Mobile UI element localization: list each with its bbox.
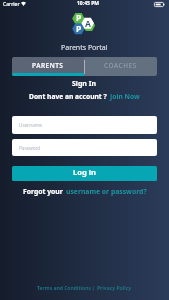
staticText: Privacy Policy	[97, 285, 132, 292]
staticText: PARENTS	[32, 61, 64, 70]
staticText: Sign In	[72, 79, 97, 89]
button[interactable]: Username	[12, 116, 157, 134]
staticText: Password	[19, 145, 41, 151]
button[interactable]: Log in	[12, 166, 157, 181]
staticText: Username	[19, 122, 42, 128]
button[interactable]: Privacy Policy	[97, 285, 132, 292]
button[interactable]: PARENTS	[12, 57, 84, 76]
staticText: P	[76, 12, 82, 24]
button[interactable]: Terms and Conditions	[37, 285, 91, 292]
button[interactable]: Join Now	[110, 92, 140, 101]
staticText: Carrier	[3, 1, 20, 8]
staticText: Parents Portal	[61, 43, 108, 53]
staticText: Log in	[73, 167, 96, 177]
staticText: Terms and Conditions	[37, 285, 91, 292]
staticText: Forgot your	[23, 187, 63, 196]
staticText: P	[76, 23, 82, 35]
button[interactable]: COACHES	[84, 57, 157, 76]
staticText: |	[91, 285, 97, 292]
button[interactable]: Password	[12, 139, 157, 156]
staticText: username or password?	[66, 187, 147, 196]
staticText: COACHES	[104, 61, 137, 70]
staticText: Join Now	[110, 92, 140, 101]
button[interactable]: username or password?	[66, 187, 147, 196]
staticText: A	[85, 18, 91, 30]
staticText: 10:45 PM	[77, 0, 99, 7]
staticText: Dont have an account ?	[29, 92, 107, 101]
